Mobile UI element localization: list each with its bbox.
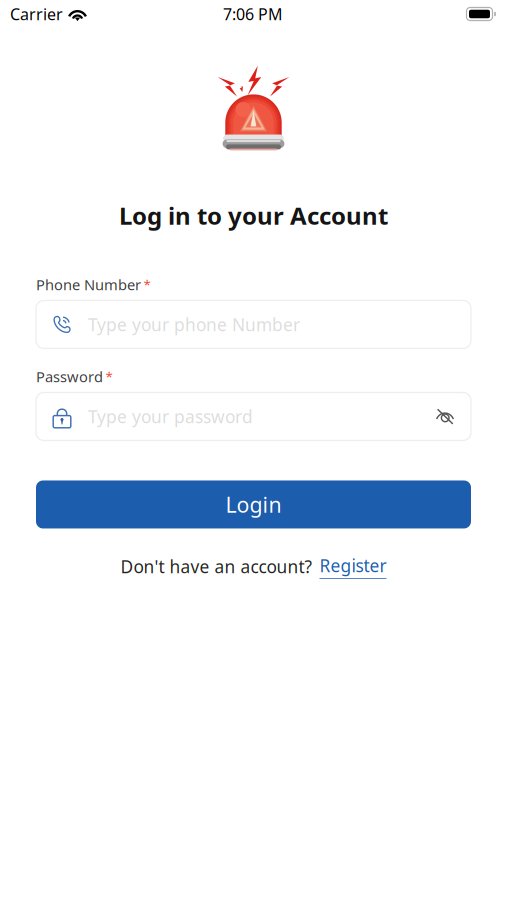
button[interactable]: Login bbox=[36, 480, 471, 528]
button[interactable]: Show password bbox=[433, 404, 457, 428]
staticText: Password bbox=[36, 367, 103, 386]
staticText: Login bbox=[225, 490, 281, 519]
staticText: Log in to your Account bbox=[119, 199, 388, 231]
staticText: Carrier bbox=[10, 3, 63, 25]
staticText: * bbox=[143, 276, 150, 293]
button[interactable]: Register bbox=[319, 554, 386, 579]
staticText: Type your password bbox=[88, 405, 253, 428]
staticText: * bbox=[105, 368, 112, 385]
staticText: Phone Number bbox=[36, 275, 141, 294]
staticText: Type your phone Number bbox=[88, 313, 300, 336]
staticText: Register bbox=[319, 554, 386, 577]
staticText: 7:06 PM bbox=[223, 3, 283, 25]
staticText: Don't have an account? bbox=[120, 555, 312, 578]
